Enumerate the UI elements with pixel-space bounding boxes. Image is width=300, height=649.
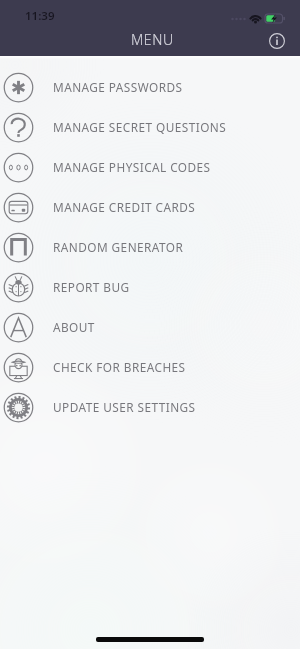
button[interactable]: REPORT BUG xyxy=(0,267,300,307)
button[interactable]: MANAGE PHYSICAL CODES xyxy=(0,147,300,187)
staticText: MANAGE PASSWORDS xyxy=(53,79,183,95)
button[interactable]: RANDOM GENERATOR xyxy=(0,227,300,267)
button[interactable]: CHECK FOR BREACHES xyxy=(0,347,300,387)
button[interactable]: MANAGE CREDIT CARDS xyxy=(0,187,300,227)
staticText: ABOUT xyxy=(53,319,95,335)
staticText: UPDATE USER SETTINGS xyxy=(53,399,196,415)
staticText: MANAGE CREDIT CARDS xyxy=(53,199,196,215)
staticText: CHECK FOR BREACHES xyxy=(53,359,186,375)
button[interactable]: MANAGE PASSWORDS xyxy=(0,67,300,107)
button[interactable]: ABOUT xyxy=(0,307,300,347)
staticText: MANAGE SECRET QUESTIONS xyxy=(53,119,227,135)
button[interactable]: Info xyxy=(263,27,291,55)
staticText: RANDOM GENERATOR xyxy=(53,239,184,255)
button[interactable]: MANAGE SECRET QUESTIONS xyxy=(0,107,300,147)
staticText: MENU xyxy=(131,30,174,49)
staticText: REPORT BUG xyxy=(53,279,130,295)
button[interactable]: UPDATE USER SETTINGS xyxy=(0,387,300,427)
staticText: MANAGE PHYSICAL CODES xyxy=(53,159,211,175)
staticText: 11:39 xyxy=(25,8,55,24)
